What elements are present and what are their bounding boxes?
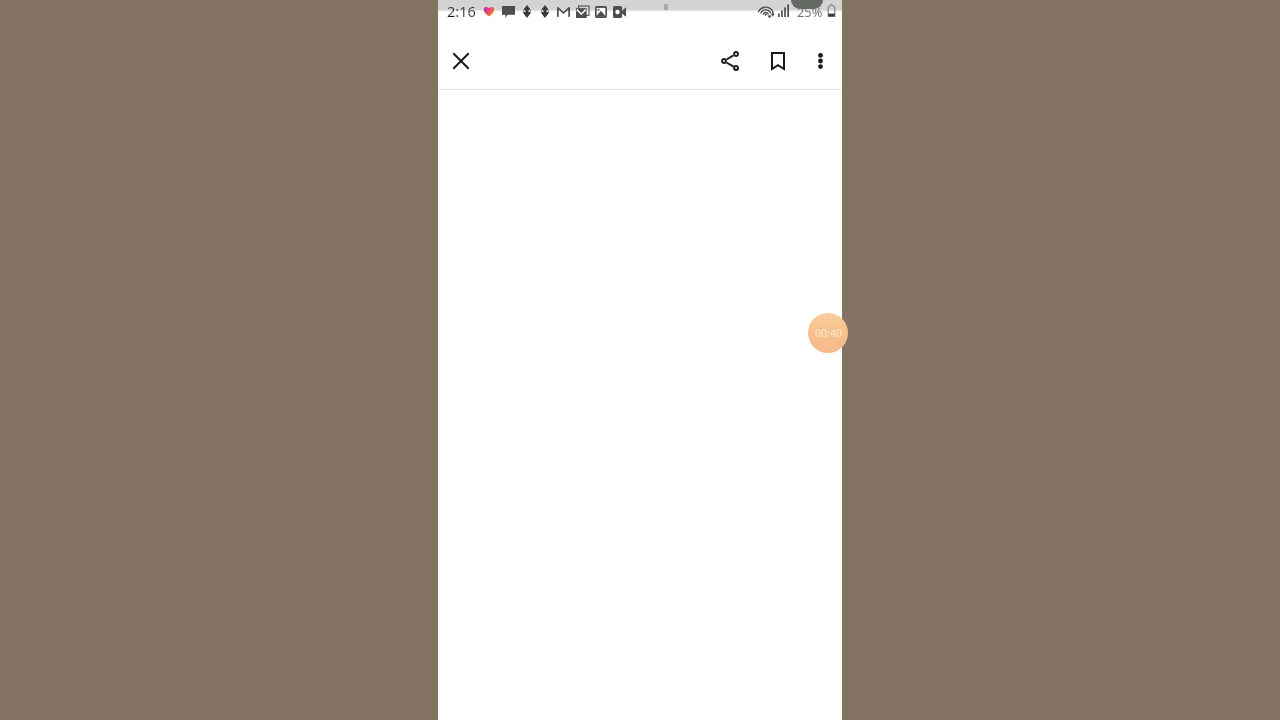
- staticText: 00:40: [815, 326, 842, 340]
- button[interactable]: Share: [712, 43, 748, 79]
- button[interactable]: Bookmark: [760, 43, 796, 79]
- button[interactable]: Close: [443, 43, 479, 79]
- button[interactable]: Timer: [808, 313, 848, 353]
- staticText: 25%: [797, 3, 823, 20]
- button[interactable]: More options: [802, 43, 838, 79]
- staticText: 2:16: [447, 1, 476, 21]
